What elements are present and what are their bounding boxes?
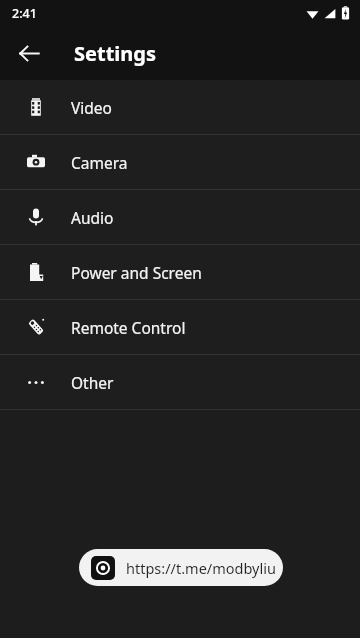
staticText: Other — [71, 372, 114, 393]
button[interactable]: Audio — [0, 190, 360, 244]
staticText: Camera — [71, 152, 128, 173]
button[interactable]: Remote Control — [0, 300, 360, 354]
button[interactable]: Back — [10, 34, 48, 72]
button[interactable]: Camera — [0, 135, 360, 189]
button[interactable]: Video — [0, 80, 360, 134]
staticText: Video — [71, 97, 112, 118]
button[interactable]: Power and Screen — [0, 245, 360, 299]
button[interactable]: https://t.me/modbyliu — [79, 549, 283, 586]
staticText: Audio — [71, 207, 114, 228]
staticText: Remote Control — [71, 317, 186, 338]
staticText: Settings — [74, 40, 156, 67]
staticText: https://t.me/modbyliu — [126, 558, 276, 578]
staticText: Power and Screen — [71, 262, 202, 283]
staticText: 2:41 — [12, 5, 37, 22]
button[interactable]: Other — [0, 355, 360, 409]
